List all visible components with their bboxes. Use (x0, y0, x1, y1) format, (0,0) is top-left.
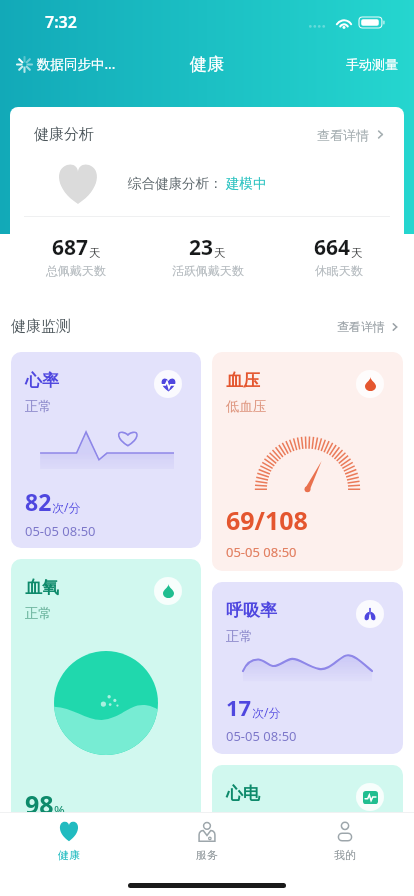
staticText: 心率 (25, 370, 59, 391)
button[interactable]: 我的 (276, 813, 414, 875)
staticText: 次/分 (52, 499, 81, 515)
button[interactable]: 手动测量 (340, 50, 414, 78)
button[interactable]: 数据同步中... (14, 51, 119, 77)
staticText: 健康分析 (34, 125, 94, 144)
staticText: 综合健康分析： (128, 175, 223, 192)
staticText: 血氧 (25, 577, 59, 598)
staticText: 05-05 08:50 (25, 522, 96, 540)
staticText: 呼吸率 (226, 600, 277, 621)
staticText: 69/108 (226, 503, 308, 537)
staticText: 次/分 (252, 704, 281, 720)
button[interactable]: 健康 (0, 813, 138, 875)
staticText: 天 (89, 246, 101, 260)
button[interactable]: 呼吸率 (212, 582, 403, 754)
staticText: 健康 (58, 848, 80, 862)
staticText: 7:32 (45, 11, 77, 33)
staticText: 数据同步中... (37, 55, 116, 73)
staticText: 23 (189, 233, 214, 262)
staticText: 82 (25, 486, 52, 517)
staticText: 98 (25, 787, 54, 821)
staticText: 正常 (25, 605, 52, 622)
button[interactable]: 心电 (212, 765, 403, 865)
staticText: 心电 (226, 783, 260, 804)
staticText: -- (226, 811, 235, 829)
staticText: 664 (314, 233, 351, 262)
staticText: 总佩戴天数 (46, 263, 106, 278)
button[interactable]: 血压 (212, 352, 403, 571)
staticText: 查看详情 (317, 127, 369, 143)
staticText: 健康监测 (11, 317, 71, 336)
button[interactable]: 心率 (11, 352, 201, 548)
staticText: 健康 (190, 54, 224, 75)
staticText: 687 (52, 233, 89, 262)
staticText: 我的 (334, 848, 356, 862)
staticText: 建模中 (226, 175, 267, 192)
staticText: 17 (226, 692, 252, 722)
staticText: 正常 (226, 628, 253, 645)
staticText: 05-05 08:50 (226, 727, 297, 745)
button[interactable]: 服务 (138, 813, 276, 875)
staticText: 查看详情 (337, 319, 385, 334)
button[interactable]: 查看详情 (335, 315, 403, 338)
staticText: 血压 (226, 370, 260, 391)
staticText: 05-05 08:50 (226, 543, 297, 561)
staticText: 天 (214, 246, 226, 260)
staticText: 天 (351, 246, 363, 260)
button[interactable]: 血氧 (11, 559, 201, 859)
staticText: % (54, 801, 65, 819)
button[interactable]: 健康分析 (10, 107, 404, 296)
staticText: 活跃佩戴天数 (172, 263, 244, 278)
staticText: 低血压 (226, 398, 267, 415)
staticText: 休眠天数 (315, 263, 363, 278)
staticText: 服务 (196, 848, 218, 862)
staticText: 正常 (25, 398, 52, 415)
